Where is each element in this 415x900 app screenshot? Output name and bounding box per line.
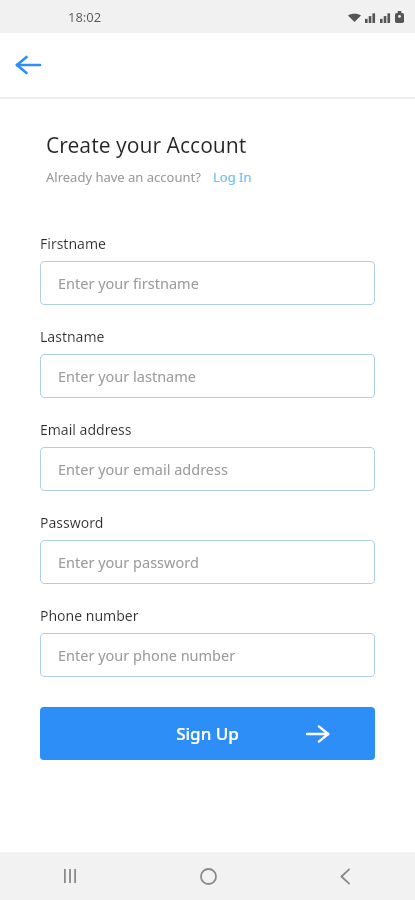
- button[interactable]: Back: [277, 852, 415, 900]
- staticText: Firstname: [40, 234, 106, 253]
- staticText: Email address: [40, 420, 132, 439]
- button[interactable]: Enter your firstname: [40, 261, 375, 305]
- button[interactable]: Enter your phone number: [40, 633, 375, 677]
- staticText: Lastname: [40, 327, 105, 346]
- staticText: Log In: [213, 168, 252, 186]
- staticText: Enter your lastname: [58, 366, 196, 386]
- staticText: Sign Up: [176, 722, 239, 745]
- button[interactable]: Recents: [0, 852, 139, 900]
- staticText: Password: [40, 513, 104, 532]
- staticText: Enter your phone number: [58, 645, 236, 665]
- button[interactable]: Sign Up: [40, 707, 375, 760]
- staticText: Create your Account: [46, 131, 247, 160]
- button[interactable]: Home: [139, 852, 277, 900]
- button[interactable]: Enter your lastname: [40, 354, 375, 398]
- staticText: Already have an account?: [46, 168, 201, 186]
- button[interactable]: Enter your email address: [40, 447, 375, 491]
- staticText: Enter your firstname: [58, 273, 199, 293]
- staticText: Phone number: [40, 606, 139, 625]
- staticText: Enter your email address: [58, 459, 228, 479]
- staticText: 18:02: [68, 8, 102, 26]
- button[interactable]: Enter your password: [40, 540, 375, 584]
- button[interactable]: Back: [6, 43, 50, 87]
- button[interactable]: Log In: [213, 168, 252, 186]
- staticText: Enter your password: [58, 552, 199, 572]
